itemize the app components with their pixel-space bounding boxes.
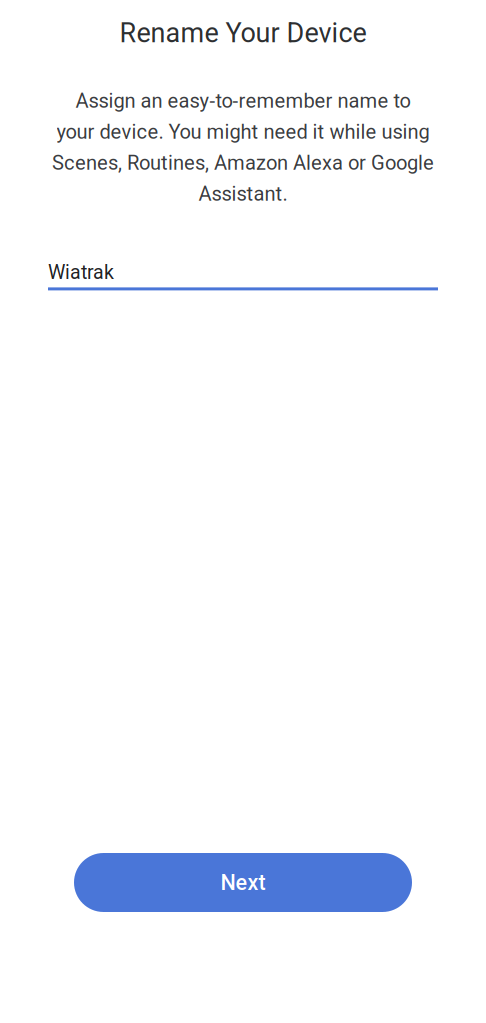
button[interactable]: Wiatrak	[48, 259, 438, 290]
staticText: Assistant.	[198, 182, 287, 206]
staticText: Wiatrak	[48, 261, 114, 284]
button[interactable]: Next	[74, 853, 412, 912]
staticText: Rename Your Device	[119, 17, 366, 49]
staticText: Next	[220, 870, 265, 895]
staticText: Scenes, Routines, Amazon Alexa or Google	[52, 151, 434, 175]
staticText: Assign an easy-to-remember name to	[75, 89, 410, 113]
staticText: your device. You might need it while usi…	[56, 120, 429, 144]
